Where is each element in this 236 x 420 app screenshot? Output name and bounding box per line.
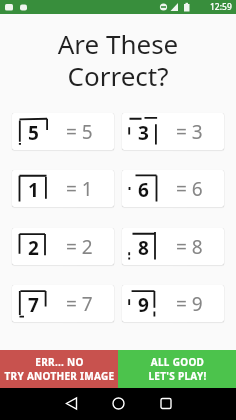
staticText: 2 (28, 235, 39, 261)
staticText: 7 (28, 292, 39, 318)
button[interactable]: 7 (12, 285, 114, 322)
staticText: = 8 (176, 234, 203, 260)
button[interactable]: 8 (122, 228, 224, 265)
button[interactable]: ERR... NO TRY ANOTHER IMAGE (0, 350, 118, 388)
staticText: 12:59 (210, 1, 232, 13)
staticText: 3 (138, 120, 149, 146)
staticText: 1 (28, 177, 39, 203)
staticText: Are These Correct? (0, 26, 236, 94)
staticText: ERR... NO TRY ANOTHER IMAGE (4, 355, 115, 383)
staticText: = 1 (66, 176, 93, 202)
button[interactable]: ALL GOOD LET'S PLAY! (118, 350, 236, 388)
staticText: = 9 (176, 291, 203, 317)
staticText: = 5 (66, 119, 93, 145)
staticText: 8 (138, 235, 149, 261)
staticText: = 7 (66, 291, 93, 317)
staticText: = 3 (176, 119, 203, 145)
button[interactable]: 6 (122, 170, 224, 207)
staticText: 9 (138, 292, 149, 318)
button[interactable]: 3 (122, 113, 224, 150)
button[interactable]: 1 (12, 170, 114, 207)
button[interactable]: 9 (122, 285, 224, 322)
button[interactable]: 2 (12, 228, 114, 265)
staticText: = 6 (176, 176, 203, 202)
staticText: 6 (138, 177, 149, 203)
staticText: 5 (28, 120, 39, 146)
button[interactable]: 5 (12, 113, 114, 150)
staticText: ALL GOOD LET'S PLAY! (148, 355, 207, 383)
staticText: = 2 (66, 234, 93, 260)
